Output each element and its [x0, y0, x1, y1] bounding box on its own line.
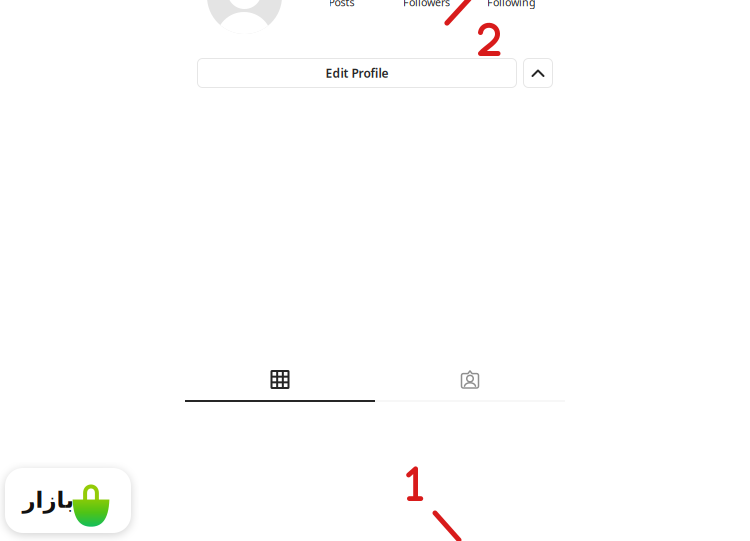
button[interactable]: Show more [523, 58, 553, 88]
button[interactable]: Posts [299, 0, 384, 8]
button[interactable]: Bazaar [5, 468, 131, 533]
staticText: Followers [403, 0, 450, 9]
staticText: Posts [328, 0, 354, 9]
button[interactable]: Followers [384, 0, 469, 8]
button[interactable]: Tagged photos [375, 359, 565, 400]
button[interactable]: Edit Profile [197, 58, 517, 88]
staticText: Following [487, 0, 536, 9]
button[interactable]: Posts grid [185, 359, 375, 400]
staticText: Edit Profile [325, 65, 388, 81]
staticText: بازار [22, 487, 74, 513]
button[interactable]: Following [469, 0, 554, 8]
